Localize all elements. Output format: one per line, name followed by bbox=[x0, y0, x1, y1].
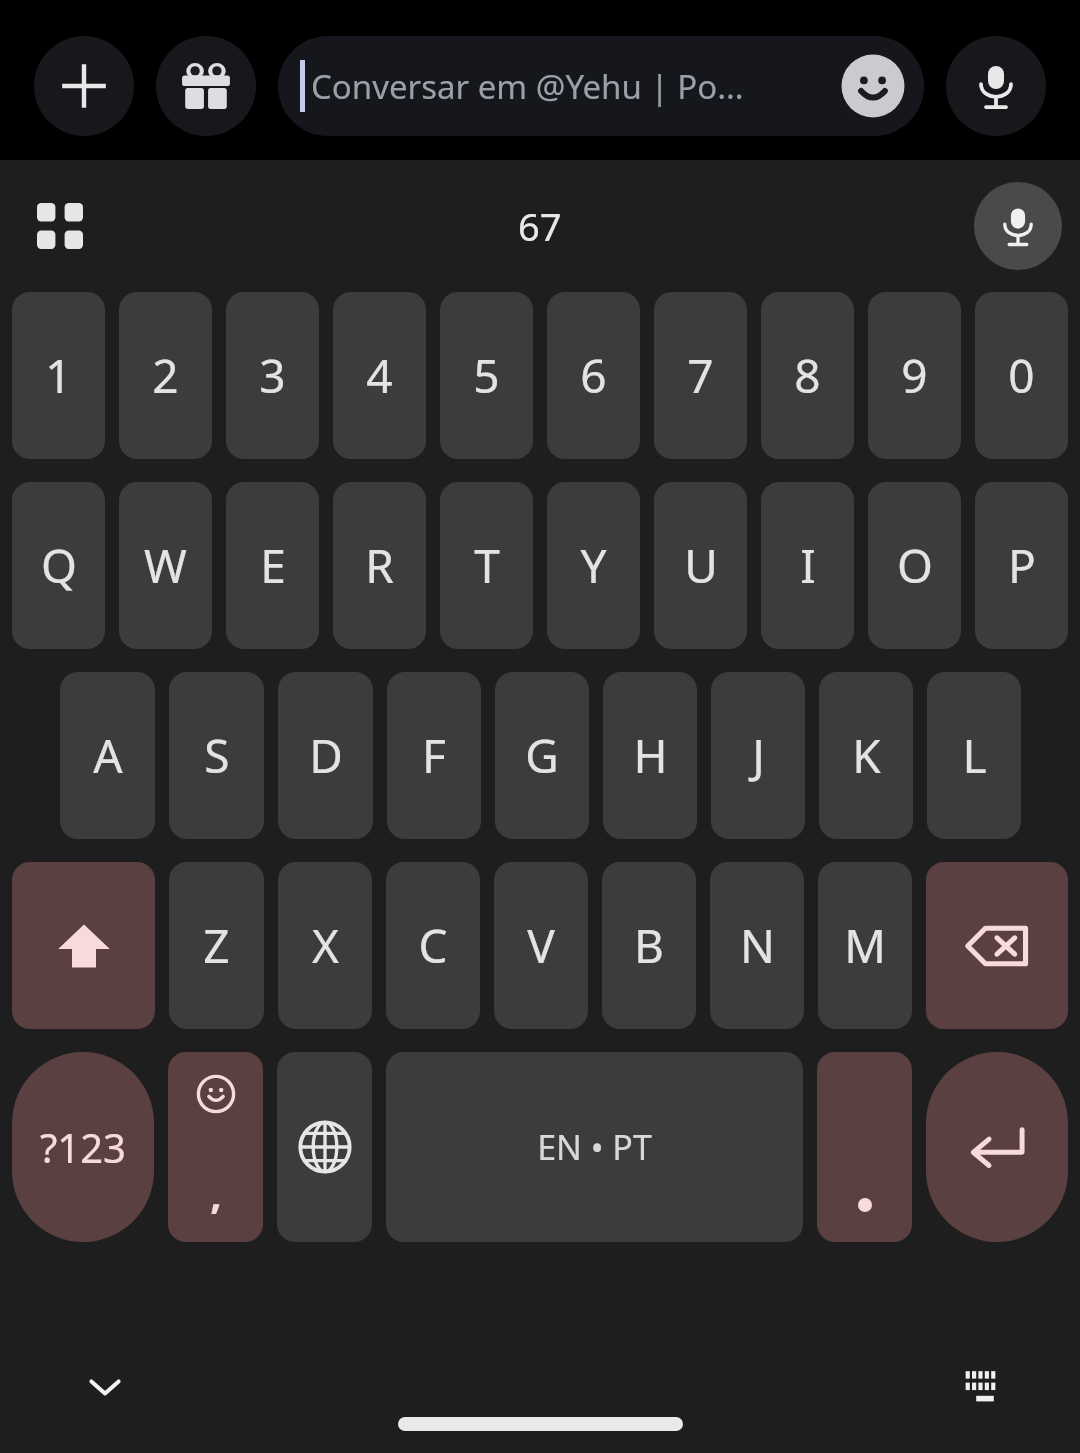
button[interactable]: 7 bbox=[654, 292, 747, 459]
button[interactable]: G bbox=[495, 672, 589, 839]
button[interactable]: E bbox=[226, 482, 319, 649]
staticText: X bbox=[312, 914, 339, 977]
staticText: 7 bbox=[687, 344, 714, 407]
button[interactable]: Gift bbox=[156, 36, 256, 136]
staticText: N bbox=[740, 914, 775, 977]
staticText: 4 bbox=[366, 344, 393, 407]
staticText: H bbox=[633, 724, 668, 787]
button[interactable]: EN • PT bbox=[386, 1052, 803, 1242]
button[interactable]: U bbox=[654, 482, 747, 649]
staticText: K bbox=[852, 724, 881, 787]
button[interactable]: Shift bbox=[12, 862, 155, 1029]
button[interactable]: 6 bbox=[547, 292, 640, 459]
button[interactable]: P bbox=[975, 482, 1068, 649]
button[interactable]: Toolbar bbox=[18, 184, 102, 268]
button[interactable]: R bbox=[333, 482, 426, 649]
staticText: 6 bbox=[580, 344, 607, 407]
staticText: 3 bbox=[259, 344, 286, 407]
button[interactable]: W bbox=[119, 482, 212, 649]
staticText: Conversar em @Yehu | Po... bbox=[311, 64, 828, 109]
staticText: Y bbox=[580, 534, 607, 597]
staticText: P bbox=[1008, 534, 1036, 597]
button[interactable]: Hide keyboard bbox=[70, 1352, 140, 1422]
staticText: S bbox=[204, 724, 230, 787]
staticText: Z bbox=[203, 914, 230, 977]
button[interactable]: 67 bbox=[518, 200, 562, 252]
staticText: B bbox=[634, 914, 664, 977]
button[interactable]: B bbox=[602, 862, 696, 1029]
button[interactable]: M bbox=[818, 862, 912, 1029]
staticText: V bbox=[527, 914, 555, 977]
staticText: 5 bbox=[473, 344, 500, 407]
staticText: U bbox=[684, 534, 718, 597]
button[interactable]: 3 bbox=[226, 292, 319, 459]
button[interactable]: 8 bbox=[761, 292, 854, 459]
button[interactable]: K bbox=[819, 672, 913, 839]
staticText: J bbox=[752, 724, 765, 787]
staticText: D bbox=[309, 724, 343, 787]
button[interactable]: Emoji bbox=[836, 49, 910, 123]
staticText: W bbox=[144, 534, 187, 597]
button[interactable]: J bbox=[711, 672, 805, 839]
staticText: L bbox=[962, 724, 987, 787]
button[interactable]: Q bbox=[12, 482, 105, 649]
button[interactable]: 4 bbox=[333, 292, 426, 459]
button[interactable]: N bbox=[710, 862, 804, 1029]
button[interactable]: Change keyboard bbox=[950, 1352, 1020, 1422]
button[interactable]: L bbox=[927, 672, 1021, 839]
staticText: 67 bbox=[518, 200, 562, 252]
staticText: E bbox=[260, 534, 286, 597]
button[interactable]: I bbox=[761, 482, 854, 649]
staticText: EN • PT bbox=[537, 1124, 652, 1170]
button[interactable]: Backspace bbox=[926, 862, 1068, 1029]
staticText: A bbox=[93, 724, 123, 787]
staticText: Q bbox=[41, 534, 77, 597]
button[interactable]: Y bbox=[547, 482, 640, 649]
button[interactable]: 2 bbox=[119, 292, 212, 459]
button[interactable]: X bbox=[278, 862, 372, 1029]
button[interactable]: D bbox=[278, 672, 373, 839]
button[interactable]: Emoji and comma bbox=[168, 1052, 263, 1242]
staticText: 0 bbox=[1008, 344, 1035, 407]
staticText: R bbox=[365, 534, 394, 597]
button[interactable]: A bbox=[60, 672, 155, 839]
button[interactable]: Period bbox=[817, 1052, 912, 1242]
staticText: ?123 bbox=[40, 1120, 126, 1174]
button[interactable]: Conversar em @Yehu | Po... bbox=[278, 36, 924, 136]
button[interactable]: 5 bbox=[440, 292, 533, 459]
button[interactable]: Switch language bbox=[277, 1052, 372, 1242]
staticText: I bbox=[800, 534, 816, 597]
staticText: C bbox=[418, 914, 448, 977]
staticText: 8 bbox=[794, 344, 821, 407]
staticText: G bbox=[525, 724, 559, 787]
staticText: T bbox=[474, 534, 500, 597]
staticText: 1 bbox=[45, 344, 72, 407]
button[interactable]: ?123 bbox=[12, 1052, 154, 1242]
staticText: O bbox=[897, 534, 933, 597]
button[interactable]: Z bbox=[169, 862, 264, 1029]
button[interactable]: 0 bbox=[975, 292, 1068, 459]
button[interactable]: Voice input bbox=[946, 36, 1046, 136]
button[interactable]: 9 bbox=[868, 292, 961, 459]
button[interactable]: T bbox=[440, 482, 533, 649]
button[interactable]: F bbox=[387, 672, 481, 839]
staticText: M bbox=[844, 914, 886, 977]
staticText: F bbox=[422, 724, 446, 787]
button[interactable]: Enter bbox=[926, 1052, 1068, 1242]
staticText: 2 bbox=[152, 344, 179, 407]
button[interactable]: O bbox=[868, 482, 961, 649]
staticText: 9 bbox=[901, 344, 928, 407]
button[interactable]: Voice typing bbox=[974, 182, 1062, 270]
button[interactable]: C bbox=[386, 862, 480, 1029]
button[interactable]: V bbox=[494, 862, 588, 1029]
button[interactable]: H bbox=[603, 672, 697, 839]
staticText: , bbox=[210, 1166, 222, 1220]
button[interactable]: S bbox=[169, 672, 264, 839]
button[interactable]: Add bbox=[34, 36, 134, 136]
button[interactable]: 1 bbox=[12, 292, 105, 459]
